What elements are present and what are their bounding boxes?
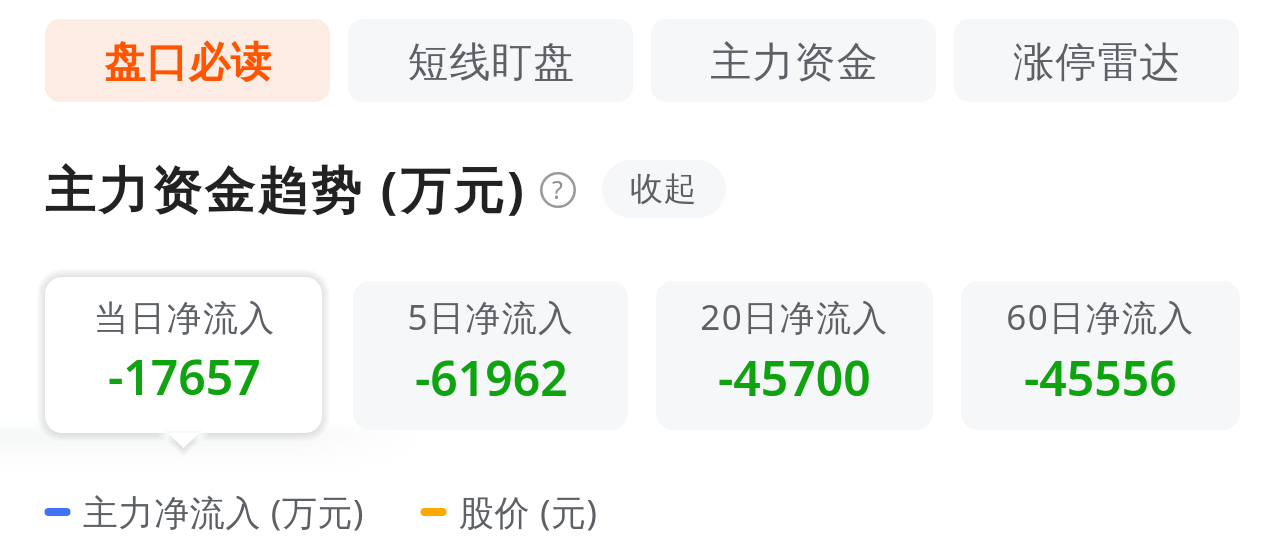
staticText: 当日净流入	[93, 296, 275, 340]
staticText: 主力资金	[710, 37, 878, 89]
staticText: -45700	[718, 345, 871, 410]
staticText: 主力资金趋势 (万元)	[45, 155, 528, 223]
button[interactable]: 涨停雷达	[954, 19, 1239, 102]
staticText: 盘口必读	[104, 37, 272, 89]
button[interactable]: 60日净流入	[961, 281, 1240, 430]
staticText: -17657	[108, 344, 261, 409]
button[interactable]: 盘口必读	[45, 19, 330, 102]
button[interactable]: 股价 (元)	[421, 488, 598, 536]
button[interactable]: 帮助说明	[538, 170, 577, 209]
button[interactable]: 当日净流入	[45, 277, 322, 433]
button[interactable]: 收起	[602, 160, 726, 218]
staticText: 主力净流入 (万元)	[83, 488, 365, 536]
staticText: 20日净流入	[700, 293, 889, 341]
button[interactable]: 主力净流入 (万元)	[45, 488, 365, 536]
staticText: -45556	[1024, 345, 1177, 410]
staticText: 涨停雷达	[1013, 37, 1181, 89]
staticText: ?	[552, 172, 563, 206]
button[interactable]: 短线盯盘	[348, 19, 633, 102]
staticText: 收起	[630, 168, 698, 210]
staticText: 60日净流入	[1006, 293, 1195, 341]
button[interactable]: 20日净流入	[656, 281, 933, 430]
staticText: 股价 (元)	[459, 488, 598, 536]
staticText: 5日净流入	[407, 293, 575, 341]
button[interactable]: 5日净流入	[353, 281, 628, 430]
staticText: 短线盯盘	[407, 37, 575, 89]
staticText: -61962	[415, 345, 568, 410]
button[interactable]: 主力资金	[651, 19, 936, 102]
